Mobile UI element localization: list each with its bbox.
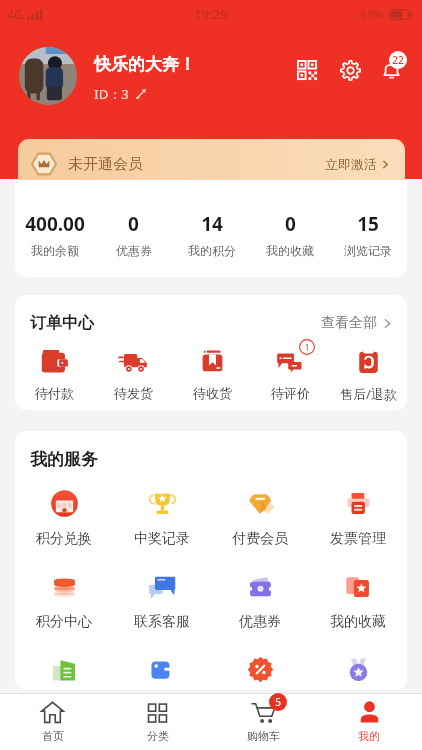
staticText: 快乐的大奔！ xyxy=(94,54,196,75)
staticText: 0 xyxy=(285,211,296,237)
staticText: 立即激活 xyxy=(325,156,377,172)
staticText: 待付款 xyxy=(35,385,74,401)
staticText: 4G xyxy=(7,6,23,22)
button[interactable]: 待发货 xyxy=(94,347,173,401)
staticText: 首页 xyxy=(42,729,64,743)
staticText: 我的余额 xyxy=(31,243,79,258)
button[interactable]: Edit profile xyxy=(94,85,148,103)
staticText: 浏览记录 xyxy=(344,243,392,258)
button[interactable] xyxy=(15,648,113,690)
button[interactable]: 1 xyxy=(251,347,329,401)
button[interactable]: 0 xyxy=(94,211,173,277)
button[interactable]: 0 xyxy=(251,211,329,277)
button[interactable]: 首页 xyxy=(0,694,105,750)
button[interactable]: 分类 xyxy=(105,694,210,750)
staticText: 分类 xyxy=(147,729,169,743)
button[interactable]: 中奖记录 xyxy=(113,482,211,565)
button[interactable] xyxy=(211,648,309,690)
staticText: 我的服务 xyxy=(30,449,98,470)
button[interactable]: Settings xyxy=(338,58,362,82)
staticText: 优惠券 xyxy=(239,613,281,631)
button[interactable]: 优惠券 xyxy=(211,565,309,648)
button[interactable]: 我的收藏 xyxy=(309,565,407,648)
staticText: 19:29 xyxy=(194,5,228,23)
button[interactable] xyxy=(113,648,211,690)
staticText: 我的收藏 xyxy=(266,243,314,258)
staticText: 22 xyxy=(392,53,404,67)
staticText: 付费会员 xyxy=(232,530,288,548)
button[interactable]: 我的 xyxy=(316,694,422,750)
button[interactable]: 积分兑换 xyxy=(15,482,113,565)
staticText: 我的积分 xyxy=(188,243,236,258)
staticText: 400.00 xyxy=(25,211,85,237)
staticText: 我的收藏 xyxy=(330,613,386,631)
staticText: 查看全部 xyxy=(321,314,377,332)
staticText: 5 xyxy=(275,695,281,709)
button[interactable]: 积分中心 xyxy=(15,565,113,648)
staticText: 优惠券 xyxy=(116,243,152,258)
button[interactable]: 发票管理 xyxy=(309,482,407,565)
staticText: 待评价 xyxy=(271,385,310,401)
button[interactable]: 联系客服 xyxy=(113,565,211,648)
button[interactable]: 付费会员 xyxy=(211,482,309,565)
staticText: 中奖记录 xyxy=(134,530,190,548)
staticText: 15 xyxy=(357,211,379,237)
button[interactable]: 15 xyxy=(329,211,407,277)
button[interactable]: Avatar xyxy=(19,47,77,105)
staticText: 待收货 xyxy=(193,385,232,401)
staticText: 发票管理 xyxy=(330,530,386,548)
button[interactable]: Notifications xyxy=(379,58,403,82)
staticText: 联系客服 xyxy=(134,613,190,631)
button[interactable] xyxy=(309,648,407,690)
staticText: 积分兑换 xyxy=(36,530,92,548)
staticText: ID：3 xyxy=(94,85,129,103)
button[interactable]: 售后/退款 xyxy=(329,347,407,403)
button[interactable]: 14 xyxy=(173,211,251,277)
staticText: 积分中心 xyxy=(36,613,92,631)
staticText: 0 xyxy=(128,211,139,237)
button[interactable]: 待收货 xyxy=(173,347,251,401)
button[interactable]: 待付款 xyxy=(15,347,94,401)
staticText: 售后/退款 xyxy=(340,385,397,403)
staticText: 14 xyxy=(201,211,223,237)
button[interactable]: QR code xyxy=(295,58,319,82)
button[interactable]: 400.00 xyxy=(15,211,94,277)
staticText: 我的 xyxy=(358,729,380,743)
staticText: 订单中心 xyxy=(30,313,94,333)
staticText: 待发货 xyxy=(114,385,153,401)
button[interactable]: 5 xyxy=(210,694,316,750)
staticText: 购物车 xyxy=(247,729,280,743)
button[interactable]: 未开通会员 xyxy=(18,139,405,183)
button[interactable]: 查看全部 xyxy=(321,314,394,332)
staticText: 未开通会员 xyxy=(68,155,143,174)
staticText: 69% xyxy=(360,6,384,22)
staticText: 1 xyxy=(304,341,310,353)
